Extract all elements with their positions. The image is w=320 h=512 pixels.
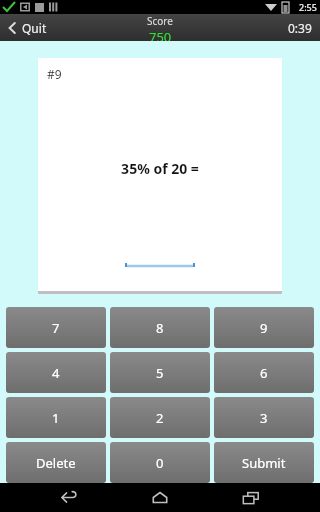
button[interactable]: 6 [214, 352, 314, 393]
staticText: Submit [242, 454, 286, 472]
staticText: 2 [156, 409, 164, 427]
button[interactable]: 3 [214, 397, 314, 438]
staticText: Quit [22, 20, 47, 36]
staticText: 9 [260, 319, 268, 337]
staticText: 1 [52, 409, 60, 427]
button[interactable]: Submit [214, 442, 314, 483]
staticText: 5 [156, 364, 164, 382]
button[interactable]: 7 [6, 307, 106, 348]
staticText: 35% of 20 = [121, 159, 199, 178]
button[interactable]: Quit [0, 14, 55, 41]
staticText: 7 [52, 319, 60, 337]
staticText: 6 [260, 364, 268, 382]
button[interactable]: Home [138, 483, 182, 512]
button[interactable]: 0 [110, 442, 210, 483]
button[interactable]: 9 [214, 307, 314, 348]
button[interactable]: 2 [110, 397, 210, 438]
button[interactable]: 4 [6, 352, 106, 393]
button[interactable]: Recent apps [229, 483, 273, 512]
staticText: 0 [156, 454, 164, 472]
staticText: 3 [260, 409, 268, 427]
button[interactable]: 1 [6, 397, 106, 438]
staticText: 750 [149, 28, 172, 41]
button[interactable]: 8 [110, 307, 210, 348]
staticText: 2:55 [299, 1, 317, 13]
staticText: 4 [52, 364, 60, 382]
staticText: 0:39 [288, 20, 312, 36]
staticText: Delete [36, 454, 76, 472]
button[interactable] [125, 248, 195, 270]
button[interactable]: 5 [110, 352, 210, 393]
staticText: 8 [156, 319, 164, 337]
button[interactable]: Back [47, 483, 91, 512]
button[interactable]: Delete [6, 442, 106, 483]
staticText: Score [147, 14, 173, 28]
staticText: #9 [47, 66, 62, 82]
